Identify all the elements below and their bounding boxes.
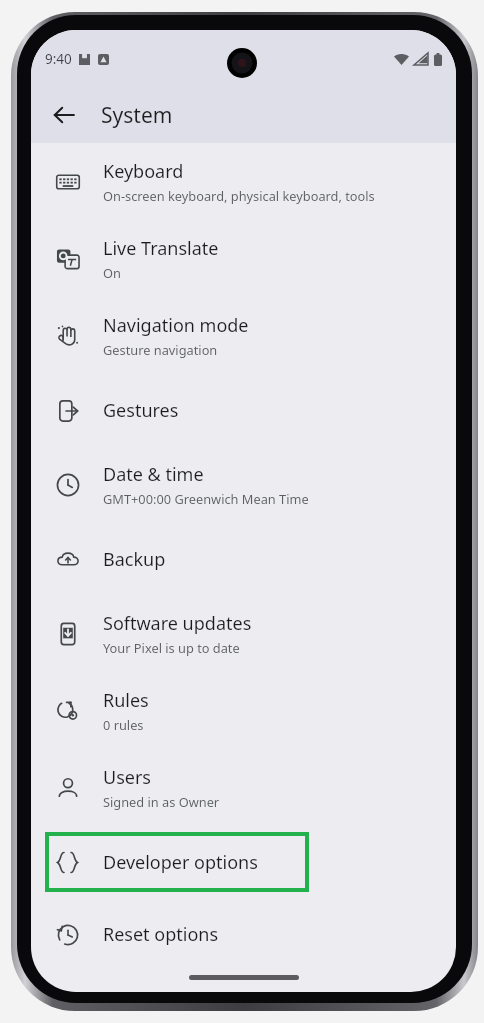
button[interactable]: Keyboard <box>31 143 456 220</box>
staticText: Live Translate <box>103 236 219 261</box>
staticText: Users <box>103 765 151 790</box>
staticText: 9:40 <box>45 50 72 68</box>
staticText: Signed in as Owner <box>103 793 220 810</box>
staticText: 0 rules <box>103 716 144 733</box>
staticText: Date & time <box>103 462 204 487</box>
staticText: Keyboard <box>103 159 184 184</box>
staticText: Gestures <box>103 398 179 423</box>
staticText: Your Pixel is up to date <box>103 639 240 656</box>
staticText: Navigation mode <box>103 313 249 338</box>
staticText: Gesture navigation <box>103 341 218 358</box>
staticText: System <box>101 101 173 130</box>
button[interactable]: Reset options <box>31 898 456 970</box>
staticText: Backup <box>103 547 166 572</box>
button[interactable]: Navigation mode <box>31 297 456 374</box>
button[interactable]: Users <box>31 749 456 826</box>
staticText: On <box>103 264 121 281</box>
button[interactable]: Gestures <box>31 374 456 446</box>
button[interactable]: Live Translate <box>31 220 456 297</box>
staticText: Software updates <box>103 611 252 636</box>
staticText: Reset options <box>103 922 219 947</box>
button[interactable]: Software updates <box>31 595 456 672</box>
button[interactable]: Backup <box>31 523 456 595</box>
staticText: On-screen keyboard, physical keyboard, t… <box>103 187 375 204</box>
staticText: GMT+00:00 Greenwich Mean Time <box>103 490 309 507</box>
staticText: Rules <box>103 688 149 713</box>
button[interactable]: Developer options <box>31 826 456 898</box>
button[interactable]: Back <box>42 93 86 137</box>
staticText: Developer options <box>103 850 258 875</box>
button[interactable]: Rules <box>31 672 456 749</box>
button[interactable]: Date & time <box>31 446 456 523</box>
